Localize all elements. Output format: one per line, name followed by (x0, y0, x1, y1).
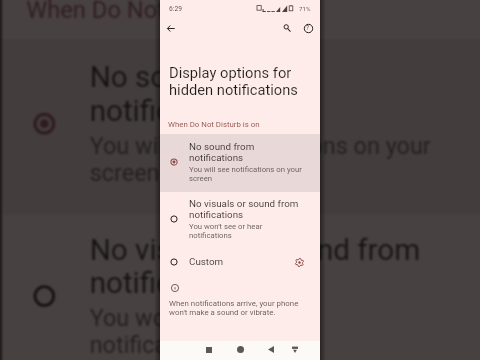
staticText: notifications (189, 231, 232, 240)
staticText: No visuals or sound from (189, 198, 299, 209)
button[interactable]: No sound from (160, 134, 320, 192)
button[interactable]: Search (278, 19, 296, 37)
staticText: No sound from (189, 141, 255, 152)
staticText: You won't see or hear (189, 222, 263, 231)
button[interactable]: Help (299, 19, 317, 37)
staticText: When Do Not Disturb is on (168, 120, 260, 129)
staticText: hidden notifications (169, 81, 298, 98)
button[interactable]: No visuals or sound from (160, 191, 320, 248)
staticText: screen (90, 160, 162, 187)
staticText: When notifications arrive, your phone (169, 299, 299, 308)
button[interactable]: Custom (160, 248, 320, 276)
staticText: 6:29 (169, 5, 182, 13)
staticText: 71% (299, 5, 311, 12)
staticText: notifications (189, 152, 244, 163)
staticText: You won't see or hear (90, 305, 313, 332)
button[interactable]: No visuals or sound from (2, 211, 480, 360)
button[interactable]: Hide keyboard (284, 340, 306, 359)
staticText: No sound from (90, 60, 289, 93)
button[interactable]: Recents (198, 340, 220, 359)
button[interactable]: Custom settings (291, 254, 307, 270)
staticText: screen (189, 174, 213, 183)
staticText: When Do Not Disturb is on (26, 0, 304, 24)
staticText: You will see notifications on your (90, 133, 431, 160)
staticText: No visuals or sound from (90, 233, 422, 266)
button[interactable]: Back (260, 340, 282, 359)
button[interactable]: Home (229, 340, 251, 359)
button[interactable]: No sound from (2, 39, 480, 214)
staticText: notifications (90, 266, 256, 299)
staticText: Custom (189, 256, 224, 267)
staticText: Display options for (169, 64, 292, 81)
staticText: ? (306, 24, 310, 32)
staticText: notifications (90, 332, 220, 359)
staticText: notifications (189, 209, 244, 220)
staticText: notifications (90, 93, 256, 127)
staticText: won't make a sound or vibrate. (169, 308, 276, 317)
button[interactable]: Navigate up (162, 19, 180, 37)
staticText: You will see notifications on your (189, 165, 302, 174)
